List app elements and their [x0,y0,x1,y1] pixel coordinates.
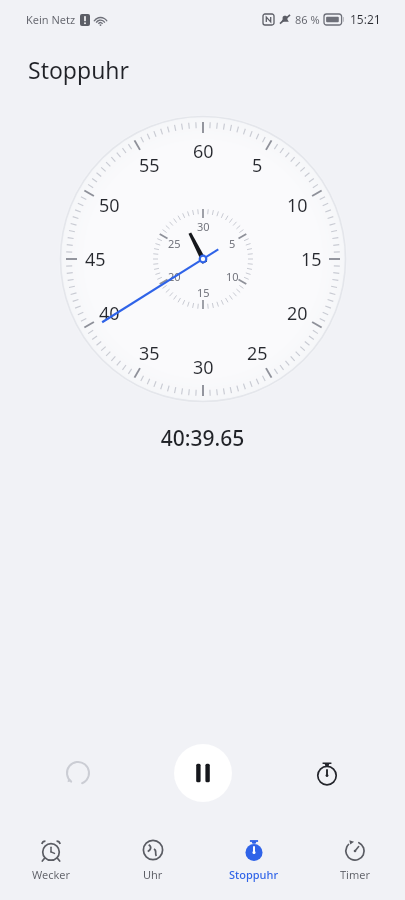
staticText: 15 [301,247,322,272]
staticText: Uhr [143,867,163,882]
button[interactable]: Pause [174,744,232,802]
staticText: 25 [168,236,181,251]
staticText: 10 [226,269,239,284]
button[interactable]: Stoppuhr [203,834,304,886]
staticText: Timer [340,867,370,882]
staticText: 40:39.65 [0,424,405,453]
button[interactable]: Runde [305,751,349,795]
button[interactable]: Uhr [102,834,203,886]
staticText: 55 [139,153,160,178]
staticText: Stoppuhr [229,867,279,882]
button[interactable]: Wecker [0,834,102,886]
button[interactable]: Zurücksetzen [56,751,100,795]
staticText: 86 % [295,12,320,27]
staticText: 5 [252,153,263,178]
staticText: 15:21 [350,11,381,27]
staticText: 45 [85,247,106,272]
staticText: Wecker [32,867,71,882]
staticText: 5 [229,236,236,251]
staticText: 15 [197,285,210,300]
staticText: 60 [193,139,214,164]
staticText: 25 [247,341,268,366]
staticText: 20 [287,301,308,326]
staticText: 20 [168,269,181,284]
staticText: 30 [193,355,214,380]
staticText: 40 [99,301,120,326]
staticText: 35 [139,341,160,366]
staticText: 30 [197,219,210,234]
staticText: Kein Netz [26,12,76,27]
staticText: 50 [99,193,120,218]
staticText: Stoppuhr [28,54,130,85]
staticText: 10 [287,193,308,218]
button[interactable]: Timer [304,834,405,886]
